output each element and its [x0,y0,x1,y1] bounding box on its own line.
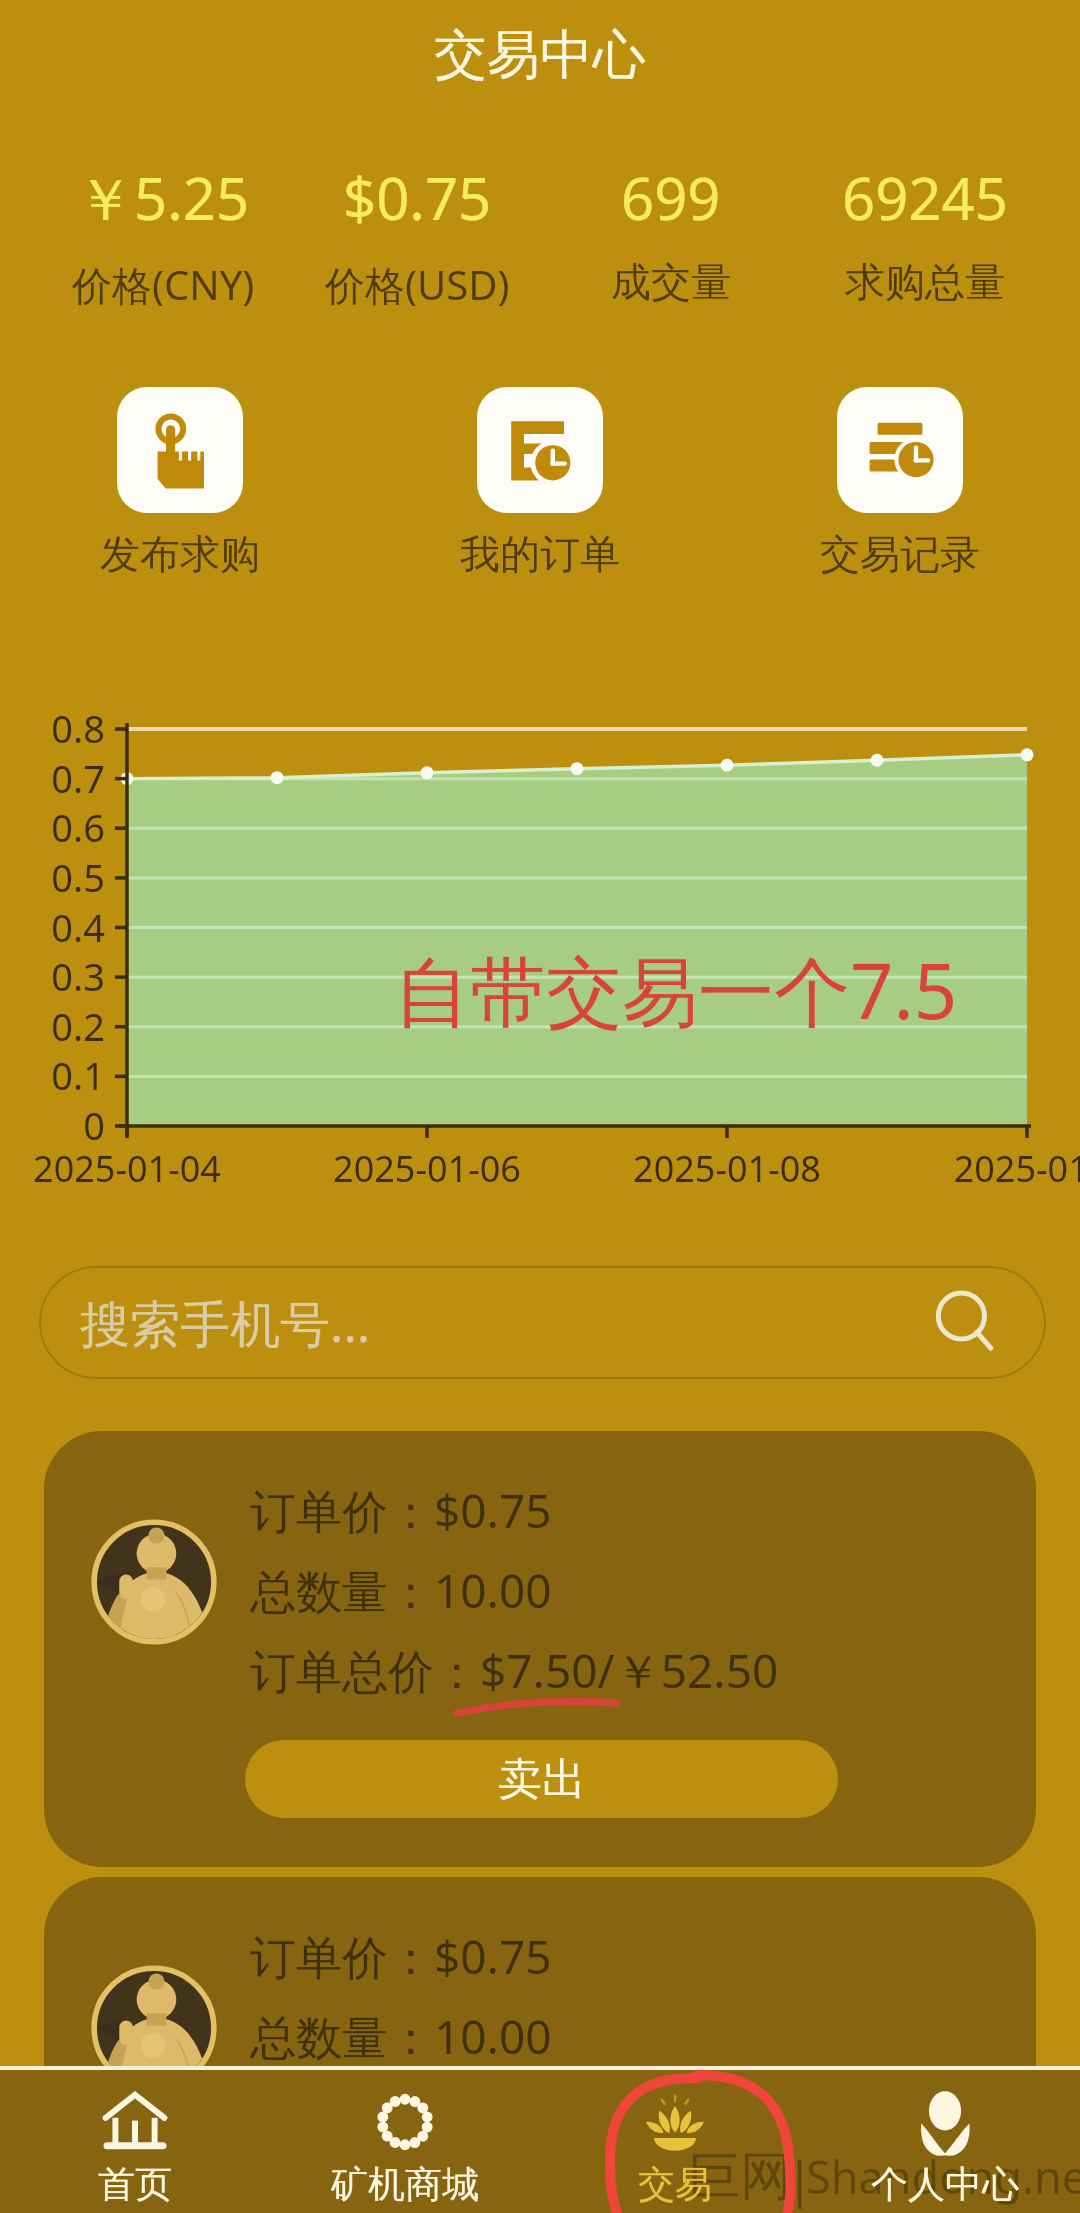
button[interactable]: 卖出 [245,2186,838,2213]
button[interactable]: 个人中心 [810,2070,1080,2213]
button[interactable]: 交易 [540,2070,810,2213]
staticText: $0.75 [343,158,492,237]
staticText: 个人中心 [871,2161,1019,2208]
staticText: 0.7 [0,752,105,804]
staticText: 69245 [842,158,1008,237]
staticText: 0 [0,1099,105,1151]
staticText: 求购总量 [845,257,1005,307]
staticText: 我的订单 [460,529,620,579]
button[interactable]: 矿机商城 [270,2070,540,2213]
staticText: 订单总价：$7.50/￥52.50 [250,1639,779,1702]
button[interactable]: 卖出 [245,1740,838,1818]
staticText: 0.3 [0,950,105,1002]
staticText: 成交量 [611,257,731,307]
staticText: 0.8 [0,702,105,754]
staticText: 0.2 [0,1000,105,1052]
staticText: 卖出 [498,1752,586,1807]
staticText: 0.6 [0,801,105,853]
staticText: 2025-01- [877,1144,1080,1193]
staticText: 搜索手机号... [80,1289,371,1357]
staticText: 2025-01-06 [277,1144,577,1193]
button[interactable]: 首页 [0,2070,270,2213]
button[interactable]: 我的订单 [360,387,720,579]
staticText: 总数量：10.00 [250,2005,552,2068]
staticText: 交易中心 [434,22,646,89]
staticText: 订单总价：$7.50/￥52.50 [250,2085,779,2148]
staticText: 0.5 [0,851,105,903]
staticText: 自带交易一个7.5 [394,938,958,1042]
staticText: 总数量：10.00 [250,1559,552,1622]
staticText: ￥5.25 [76,158,250,237]
staticText: 交易记录 [820,529,980,579]
button[interactable]: 搜索手机号... [39,1266,1046,1379]
staticText: 发布求购 [100,529,260,579]
staticText: 矿机商城 [331,2161,479,2208]
staticText: 0.1 [0,1049,105,1101]
staticText: 订单价：$0.75 [250,1925,552,1988]
staticText: | [786,2144,814,2212]
staticText: 699 [621,158,721,237]
staticText: 2025-01-04 [0,1144,277,1193]
staticText: 订单价：$0.75 [250,1479,552,1542]
button[interactable]: 订单价：$0.75 [44,1431,1036,1867]
other: Search [932,1288,1002,1358]
staticText: 首页 [98,2161,172,2208]
staticText: 价格(CNY) [72,257,255,312]
button[interactable]: 发布求购 [0,387,360,579]
staticText: 交易 [638,2161,712,2208]
staticText: 巨网 [688,2144,792,2210]
staticText: 价格(USD) [325,257,510,312]
staticText: 0.4 [0,901,105,953]
button[interactable]: 订单价：$0.75 [44,1877,1036,2213]
button[interactable]: 交易记录 [720,387,1080,579]
staticText: Shandong.net [806,2146,1080,2207]
staticText: 2025-01-08 [577,1144,877,1193]
